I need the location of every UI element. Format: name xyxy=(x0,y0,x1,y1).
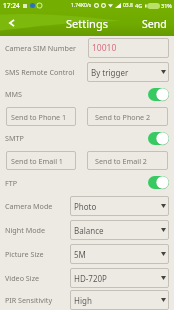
staticText: Video Size xyxy=(5,273,40,283)
staticText: 4G xyxy=(135,2,143,9)
staticText: Send xyxy=(142,17,167,31)
staticText: Settings xyxy=(66,16,108,31)
button[interactable]: Send to Email 1 xyxy=(6,151,76,170)
staticText: Send to Phone 1 xyxy=(11,112,67,122)
button[interactable]: Picture Size xyxy=(0,242,174,266)
staticText: Photo xyxy=(74,201,97,212)
staticText: SMTP xyxy=(5,133,148,143)
staticText: 5M xyxy=(74,249,86,260)
staticText: Camera SIM Number xyxy=(5,43,76,53)
button[interactable]: SMTP xyxy=(0,127,174,149)
staticText: FTP xyxy=(5,178,148,188)
staticText: MMS xyxy=(5,89,148,99)
button[interactable]: Back xyxy=(0,11,23,36)
button[interactable]: Send to Phone 2 xyxy=(87,107,168,126)
staticText: 31% xyxy=(161,2,172,9)
staticText: Balance xyxy=(74,225,104,236)
staticText: Send to Phone 2 xyxy=(95,112,151,122)
staticText: 03.8 xyxy=(123,2,133,9)
button[interactable]: Send to Email 2 xyxy=(87,151,168,170)
button[interactable]: Send to Phone 1 xyxy=(6,107,76,126)
staticText: Night Mode xyxy=(5,225,45,235)
staticText: 1.74K0/s xyxy=(71,2,92,9)
staticText: SMS Remote Control xyxy=(5,67,75,77)
button[interactable]: PIR Sensitivity xyxy=(0,290,174,310)
staticText: By trigger xyxy=(91,67,129,78)
button[interactable]: Camera SIM Number xyxy=(0,36,174,60)
button[interactable]: Night Mode xyxy=(0,218,174,242)
staticText: High xyxy=(74,295,92,306)
staticText: Picture Size xyxy=(5,249,44,259)
staticText: Send to Email 2 xyxy=(95,156,147,166)
button[interactable]: Send xyxy=(134,11,174,36)
button[interactable]: MMS xyxy=(0,83,174,105)
button[interactable]: Camera Mode xyxy=(0,194,174,218)
staticText: HD-720P xyxy=(74,273,107,284)
staticText: Send to Email 1 xyxy=(11,156,63,166)
staticText: 17:24 xyxy=(3,1,20,10)
button[interactable]: FTP xyxy=(0,171,174,194)
staticText: Camera Mode xyxy=(5,201,53,211)
button[interactable]: SMS Remote Control xyxy=(0,60,174,83)
staticText: 10010 xyxy=(92,42,117,54)
button[interactable]: Video Size xyxy=(0,266,174,290)
staticText: PIR Sensitivity xyxy=(5,295,53,305)
